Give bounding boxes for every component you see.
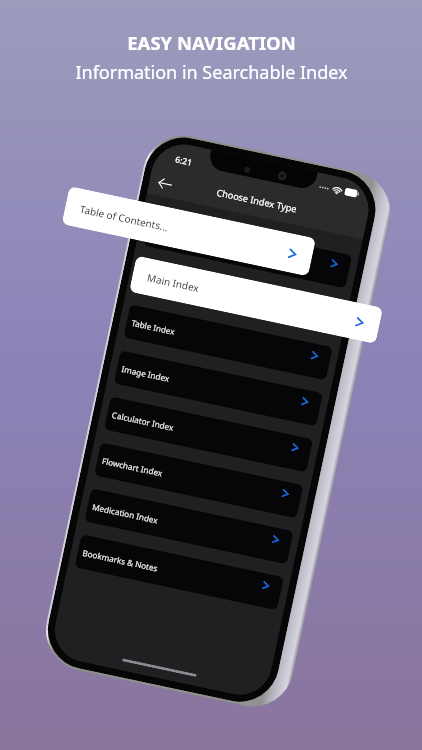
staticText: 6:21: [174, 154, 193, 169]
staticText: Main Index: [146, 270, 201, 295]
staticText: Image Index: [121, 363, 171, 384]
button[interactable]: Main Index: [133, 258, 343, 335]
staticText: Main Index: [140, 271, 184, 291]
staticText: Choose Index Type: [215, 186, 298, 216]
staticText: Information in Searchable Index: [75, 60, 348, 85]
button[interactable]: Calculator Index: [104, 396, 313, 472]
button[interactable]: Table of Contents...: [143, 212, 352, 289]
staticText: Calculator Index: [111, 409, 175, 433]
staticText: Medication Index: [91, 501, 159, 526]
staticText: Table of Contents...: [79, 202, 170, 234]
button[interactable]: Medication Index: [84, 488, 294, 564]
staticText: EASY NAVIGATION: [127, 30, 296, 55]
button[interactable]: Back: [157, 175, 173, 192]
button[interactable]: Image Index: [113, 350, 323, 426]
staticText: Bookmarks & Notes: [82, 547, 159, 574]
staticText: Table Index: [130, 317, 177, 337]
button[interactable]: Bookmarks & Notes: [74, 534, 284, 610]
button[interactable]: Table Index: [123, 304, 333, 380]
button[interactable]: Table of Contents...: [61, 186, 316, 276]
staticText: Flowchart Index: [101, 455, 164, 479]
staticText: Table of Contents...: [150, 225, 225, 251]
button[interactable]: Flowchart Index: [94, 442, 303, 518]
button[interactable]: Main Index: [129, 255, 383, 344]
